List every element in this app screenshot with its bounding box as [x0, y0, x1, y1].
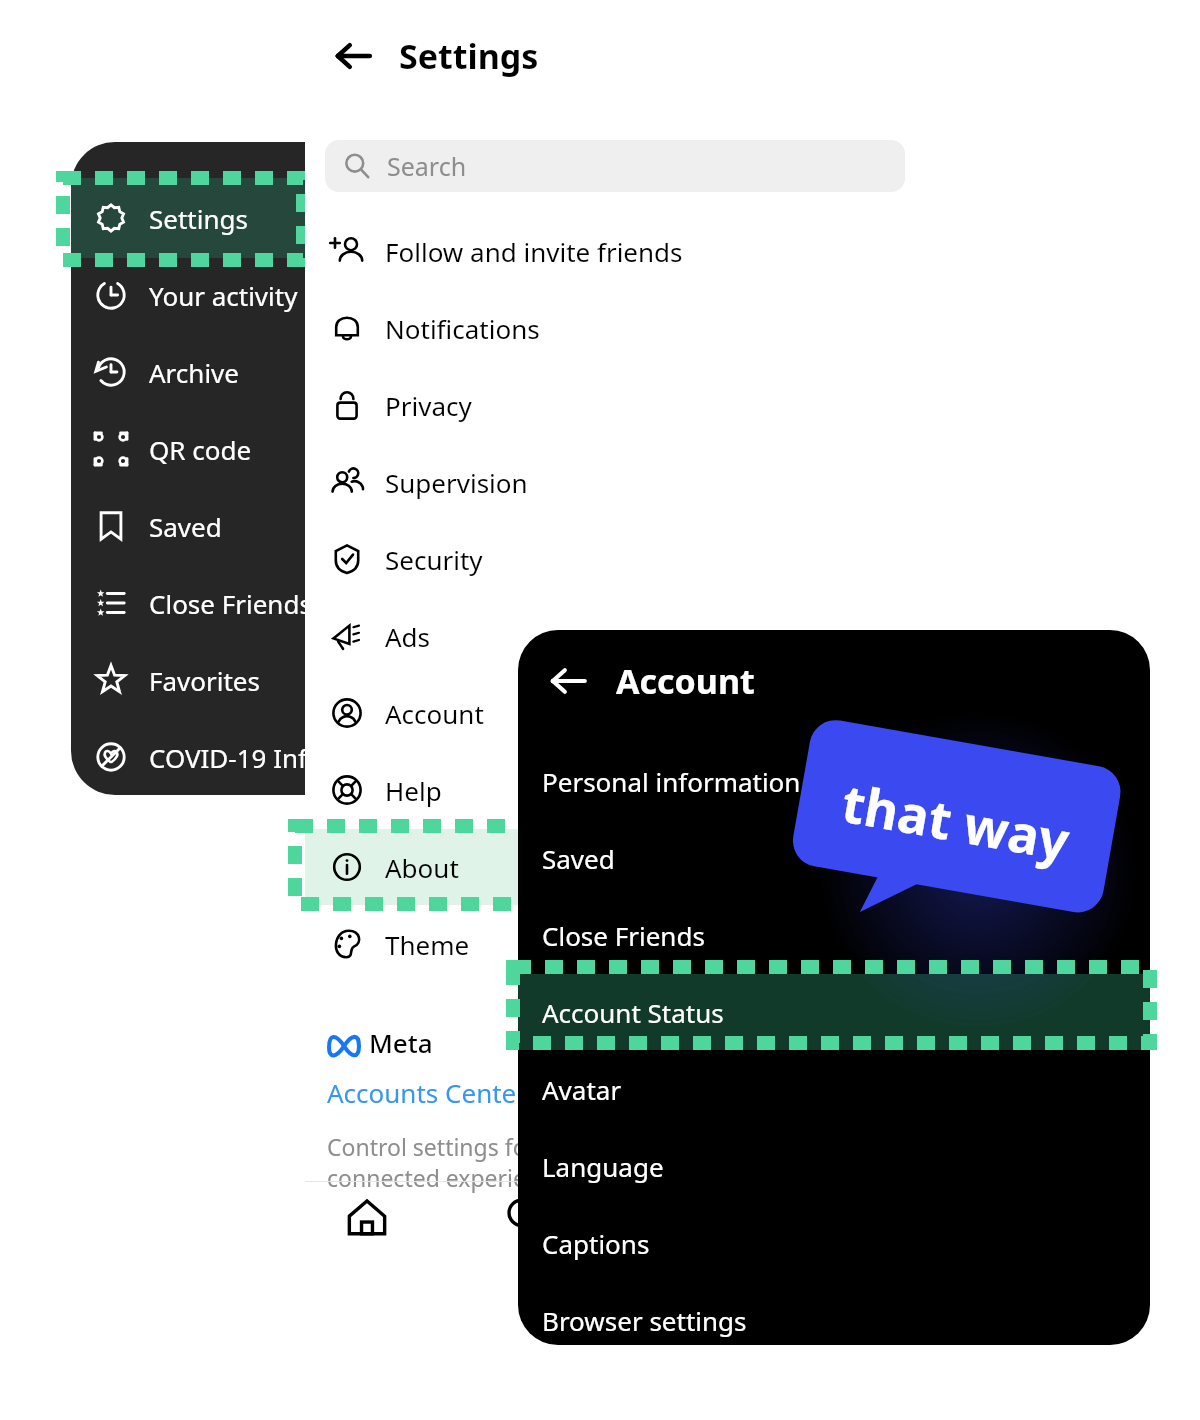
staticText: Account Status	[542, 995, 724, 1030]
staticText: Favorites	[149, 663, 260, 698]
button[interactable]: Settings	[71, 178, 381, 258]
staticText: Close Friends	[542, 918, 705, 953]
staticText: Close Friends	[149, 586, 312, 621]
staticText: Privacy	[385, 388, 472, 423]
staticText: Search	[387, 149, 467, 183]
button[interactable]: Notifications	[305, 290, 925, 366]
staticText: Your activity	[149, 278, 298, 313]
button[interactable]: Browser settings	[518, 1282, 1150, 1345]
button[interactable]: Close Friends	[71, 563, 381, 643]
staticText: Control settings for connected experienc…	[327, 1131, 576, 1194]
button[interactable]: Personal information	[518, 743, 1150, 819]
staticText: Language	[542, 1149, 664, 1184]
button[interactable]: Help	[305, 752, 925, 828]
staticText: Account	[385, 696, 484, 731]
staticText: Settings	[149, 201, 248, 236]
button[interactable]: Favorites	[71, 640, 381, 720]
button[interactable]: QR code	[71, 409, 381, 489]
button[interactable]: Captions	[518, 1205, 1150, 1281]
button[interactable]: Follow and invite friends	[305, 213, 925, 289]
button[interactable]: Search	[493, 1185, 557, 1249]
staticText: Supervision	[385, 465, 528, 500]
button[interactable]: Close Friends	[518, 897, 1150, 973]
button[interactable]: Your activity	[71, 255, 381, 335]
staticText: Archive	[149, 355, 239, 390]
button[interactable]: Saved	[518, 820, 1150, 896]
button[interactable]: Archive	[71, 332, 381, 412]
staticText: that way	[837, 766, 1075, 876]
button[interactable]: Back	[325, 28, 381, 84]
button[interactable]: Search	[325, 140, 905, 192]
button[interactable]: Account Status	[518, 974, 1150, 1050]
staticText: About	[385, 850, 459, 885]
staticText: Personal information	[542, 764, 801, 799]
button[interactable]: Privacy	[305, 367, 925, 443]
staticText: Follow and invite friends	[385, 234, 683, 269]
button[interactable]: Account	[305, 675, 925, 751]
staticText: Browser settings	[542, 1303, 747, 1338]
button[interactable]: Accounts Center	[327, 1075, 527, 1110]
staticText: Ads	[385, 619, 431, 654]
button[interactable]: Back	[540, 653, 596, 709]
button[interactable]: Security	[305, 521, 925, 597]
staticText: Help	[385, 773, 442, 808]
staticText: Notifications	[385, 311, 540, 346]
staticText: Security	[385, 542, 483, 577]
staticText: Account	[616, 658, 755, 704]
staticText: Saved	[149, 509, 222, 544]
staticText: Captions	[542, 1226, 650, 1261]
button[interactable]: Ads	[305, 598, 925, 674]
staticText: Avatar	[542, 1072, 622, 1107]
staticText: Theme	[385, 927, 470, 962]
button[interactable]: About	[305, 829, 925, 905]
button[interactable]: Avatar	[518, 1051, 1150, 1127]
staticText: QR code	[149, 432, 252, 467]
staticText: COVID-19 Info	[149, 740, 323, 775]
button[interactable]: COVID-19 Info	[71, 717, 381, 795]
staticText: Settings	[399, 33, 539, 79]
button[interactable]: Home	[335, 1185, 399, 1249]
button[interactable]: Saved	[71, 486, 381, 566]
button[interactable]: Theme	[305, 906, 925, 982]
button[interactable]: Language	[518, 1128, 1150, 1204]
button[interactable]: Supervision	[305, 444, 925, 520]
staticText: Saved	[542, 841, 615, 876]
staticText: Meta	[369, 1025, 433, 1060]
